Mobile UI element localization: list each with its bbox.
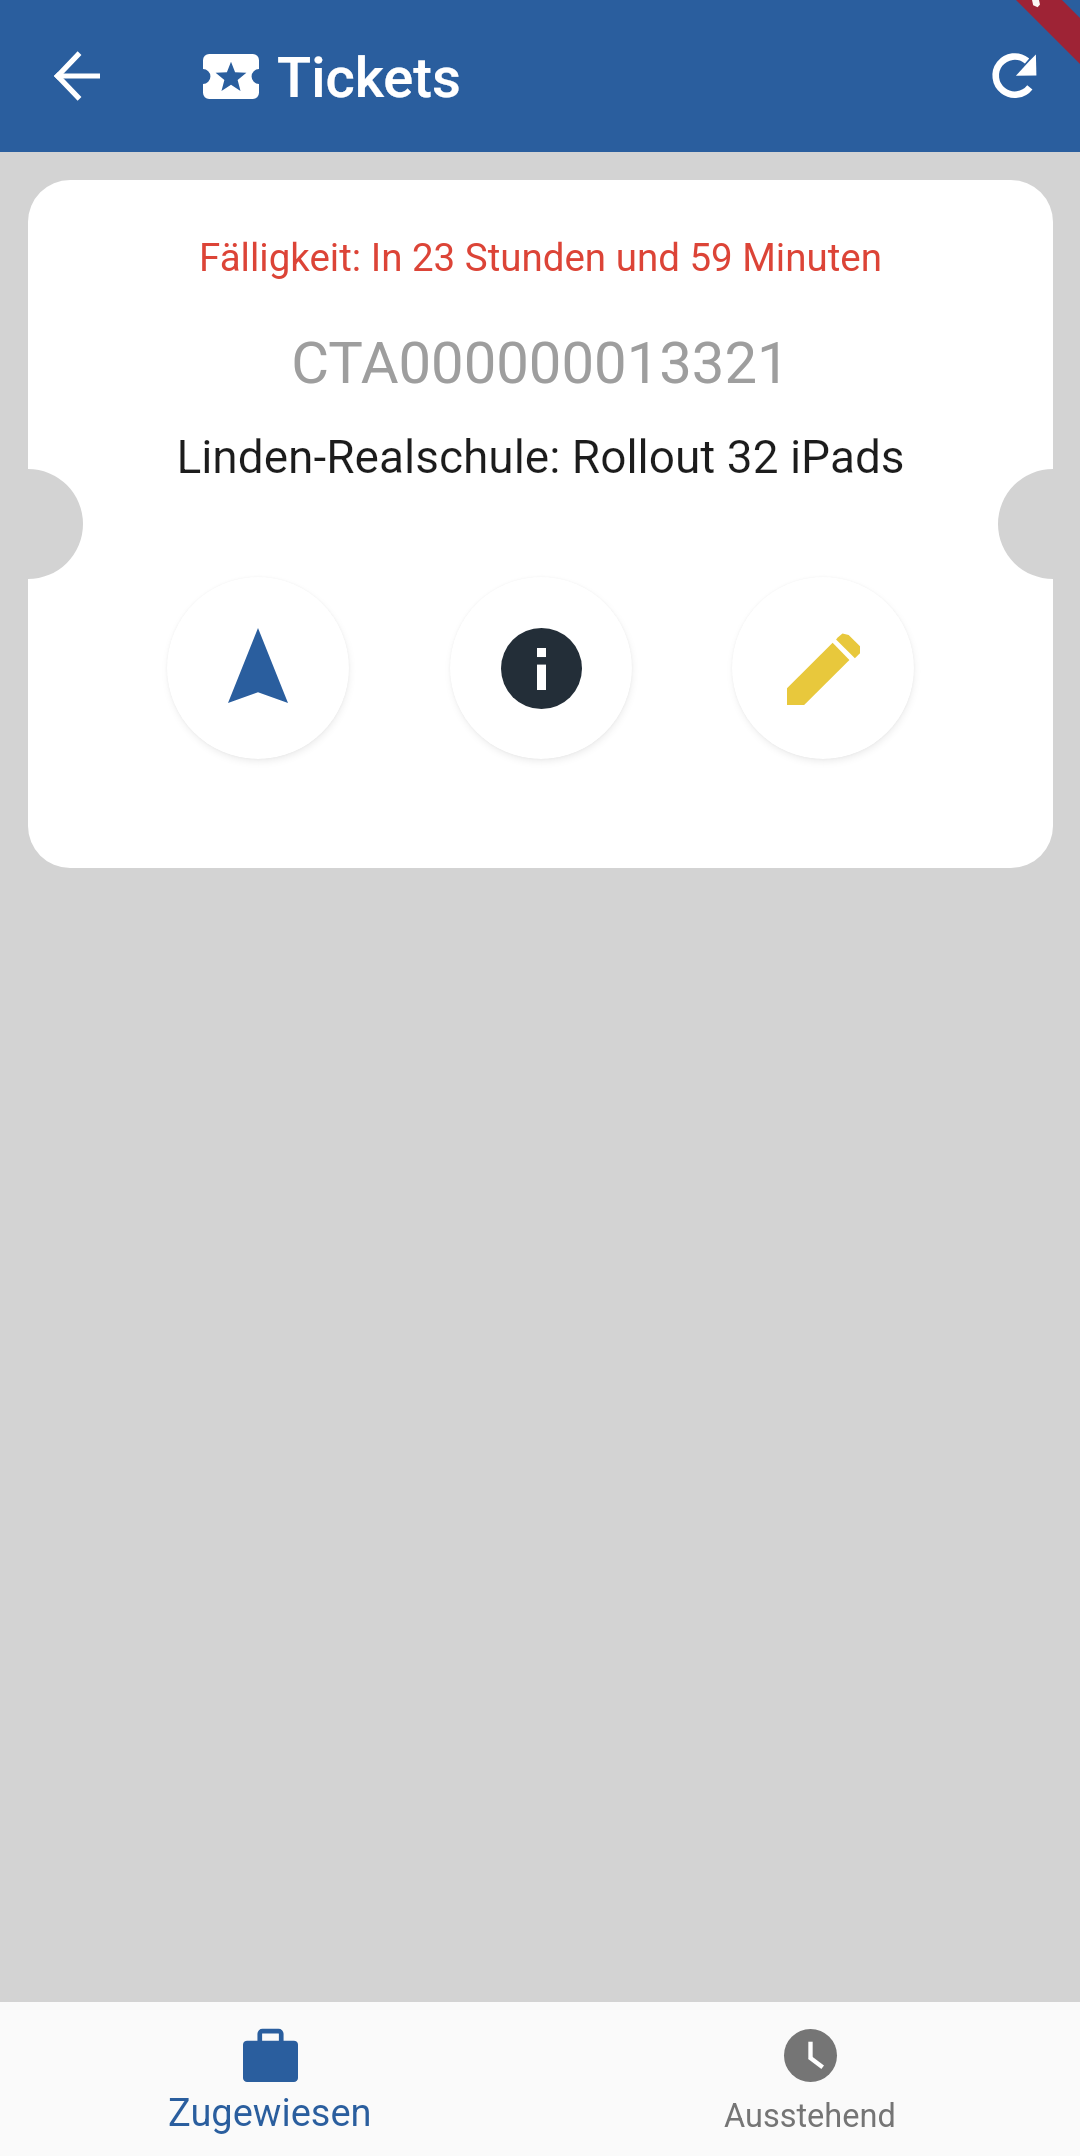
button[interactable]: Edit xyxy=(732,577,914,759)
staticText: Zugewiesen xyxy=(168,2091,372,2136)
staticText: CTA000000013321 xyxy=(291,329,790,397)
button[interactable]: Info xyxy=(450,577,632,759)
staticText: Ausstehend xyxy=(724,2097,896,2135)
button[interactable]: Zugewiesen xyxy=(0,2002,540,2156)
button[interactable]: Refresh xyxy=(966,28,1062,124)
button[interactable]: Ausstehend xyxy=(540,2002,1080,2156)
button[interactable]: Fälligkeit: In 23 Stunden und 59 Minuten xyxy=(28,180,1053,868)
staticText: Linden-Realschule: Rollout 32 iPads xyxy=(176,430,905,484)
button[interactable]: Navigate xyxy=(167,577,349,759)
staticText: Tickets xyxy=(277,45,461,111)
staticText: Fälligkeit: In 23 Stunden und 59 Minuten xyxy=(199,235,882,280)
button[interactable]: Back xyxy=(29,28,125,124)
